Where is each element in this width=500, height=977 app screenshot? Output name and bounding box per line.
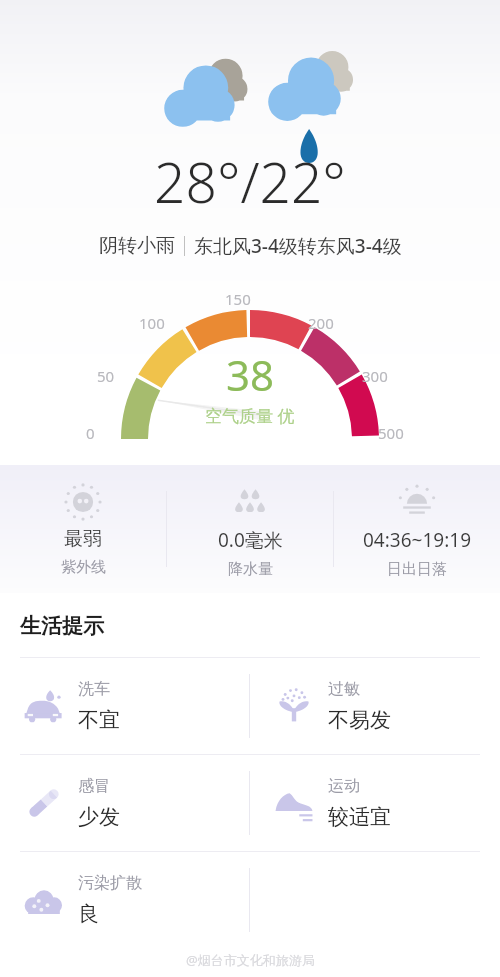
staticText: 300 bbox=[362, 366, 388, 386]
staticText: 不宜 bbox=[78, 707, 120, 733]
staticText: 28°/22° bbox=[154, 144, 346, 219]
other: Sunrise sunset bbox=[394, 479, 440, 525]
staticText: 38 bbox=[226, 346, 275, 403]
button[interactable]: 污染扩散 bbox=[0, 852, 249, 948]
button[interactable]: Sunrise sunset bbox=[334, 465, 500, 593]
staticText: 少发 bbox=[78, 804, 120, 830]
staticText: 100 bbox=[139, 313, 165, 333]
staticText: 良 bbox=[78, 901, 99, 927]
button[interactable]: 洗车 bbox=[0, 658, 249, 754]
staticText: 0 bbox=[86, 423, 95, 443]
staticText: 500 bbox=[378, 423, 404, 443]
staticText: 污染扩散 bbox=[78, 873, 142, 893]
staticText: 200 bbox=[308, 313, 334, 333]
staticText: 洗车 bbox=[78, 679, 110, 699]
button[interactable]: 运动 bbox=[250, 755, 500, 851]
button[interactable]: 感冒 bbox=[0, 755, 249, 851]
staticText: 150 bbox=[225, 289, 251, 309]
button[interactable]: 过敏 bbox=[250, 658, 500, 754]
staticText: 降水量 bbox=[228, 560, 273, 579]
staticText: 最弱 bbox=[64, 527, 102, 551]
staticText: 运动 bbox=[328, 776, 360, 796]
staticText: 东北风3-4级转东风3-4级 bbox=[194, 233, 402, 259]
staticText: 04:36~19:19 bbox=[363, 527, 471, 553]
staticText: 阴转小雨 bbox=[99, 234, 175, 258]
staticText: 较适宜 bbox=[328, 804, 391, 830]
staticText: 感冒 bbox=[78, 776, 110, 796]
staticText: 不易发 bbox=[328, 707, 391, 733]
other: UV index bbox=[60, 479, 106, 525]
staticText: 日出日落 bbox=[387, 560, 447, 579]
other: Precipitation bbox=[227, 479, 273, 525]
staticText: 生活提示 bbox=[20, 613, 104, 639]
button[interactable]: UV index bbox=[0, 465, 166, 593]
staticText: 50 bbox=[97, 366, 115, 386]
staticText: 空气质量 优 bbox=[205, 404, 295, 427]
button[interactable]: Precipitation bbox=[167, 465, 333, 593]
staticText: 过敏 bbox=[328, 679, 360, 699]
staticText: 紫外线 bbox=[61, 558, 106, 577]
staticText: @烟台市文化和旅游局 bbox=[186, 951, 315, 969]
staticText: 0.0毫米 bbox=[218, 527, 283, 553]
